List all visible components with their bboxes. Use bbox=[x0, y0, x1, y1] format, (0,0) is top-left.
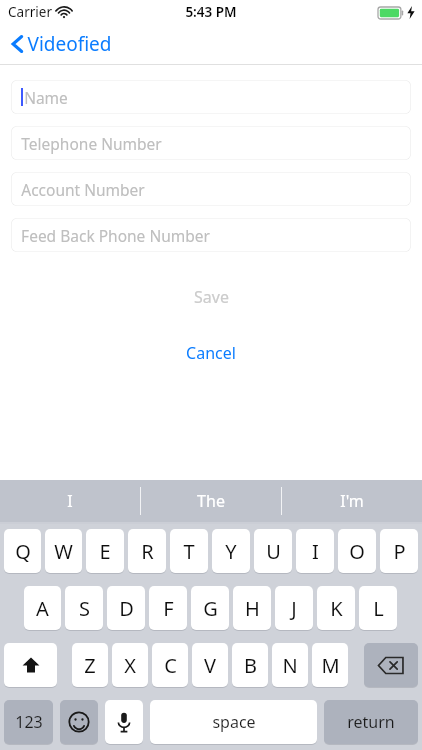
button[interactable]: V bbox=[192, 643, 228, 687]
staticText: Z bbox=[84, 652, 96, 679]
button[interactable]: I bbox=[296, 529, 334, 573]
staticText: Carrier bbox=[8, 3, 52, 21]
staticText: Save bbox=[194, 286, 229, 308]
button[interactable]: W bbox=[45, 529, 82, 573]
staticText: U bbox=[266, 538, 281, 565]
staticText: The bbox=[197, 490, 225, 512]
button[interactable]: Account Number bbox=[11, 172, 411, 206]
button[interactable]: N bbox=[272, 643, 308, 687]
button[interactable]: return bbox=[324, 700, 418, 744]
staticText: V bbox=[204, 652, 216, 679]
staticText: Account Number bbox=[21, 179, 145, 200]
staticText: Videofied bbox=[27, 31, 112, 57]
staticText: return bbox=[347, 711, 395, 733]
staticText: M bbox=[321, 652, 340, 679]
staticText: B bbox=[244, 652, 257, 679]
staticText: space bbox=[212, 711, 256, 733]
button[interactable]: The bbox=[141, 480, 281, 522]
staticText: Feed Back Phone Number bbox=[21, 225, 210, 246]
button[interactable]: Q bbox=[4, 529, 41, 573]
staticText: N bbox=[282, 652, 298, 679]
button[interactable]: 123 bbox=[4, 700, 53, 744]
staticText: C bbox=[164, 652, 177, 679]
staticText: X bbox=[124, 652, 136, 679]
button[interactable]: Name bbox=[11, 80, 411, 114]
button[interactable]: E bbox=[86, 529, 124, 573]
staticText: I bbox=[312, 538, 319, 565]
button[interactable]: Cancel bbox=[0, 340, 422, 366]
staticText: J bbox=[291, 595, 297, 622]
button[interactable]: B bbox=[232, 643, 268, 687]
staticText: Cancel bbox=[186, 342, 236, 364]
button[interactable]: M bbox=[312, 643, 348, 687]
staticText: H bbox=[245, 595, 260, 622]
staticText: K bbox=[330, 595, 343, 622]
staticText: L bbox=[373, 595, 384, 622]
staticText: A bbox=[36, 595, 49, 622]
button[interactable]: X bbox=[112, 643, 148, 687]
staticText: S bbox=[79, 595, 90, 622]
staticText: P bbox=[393, 538, 406, 565]
button[interactable]: Z bbox=[72, 643, 108, 687]
button[interactable]: T bbox=[170, 529, 208, 573]
button[interactable]: I bbox=[0, 480, 140, 522]
button[interactable]: Telephone Number bbox=[11, 126, 411, 160]
staticText: Telephone Number bbox=[21, 133, 162, 154]
staticText: T bbox=[183, 538, 195, 565]
staticText: 5:43 PM bbox=[185, 3, 237, 21]
button[interactable]: H bbox=[233, 586, 271, 630]
button[interactable]: U bbox=[254, 529, 292, 573]
button[interactable]: Emoji bbox=[60, 700, 98, 744]
button[interactable]: G bbox=[191, 586, 229, 630]
staticText: Name bbox=[24, 87, 68, 108]
staticText: D bbox=[119, 595, 134, 622]
button[interactable]: O bbox=[338, 529, 376, 573]
staticText: O bbox=[349, 538, 365, 565]
staticText: Q bbox=[15, 538, 31, 565]
button[interactable]: Feed Back Phone Number bbox=[11, 218, 411, 252]
staticText: G bbox=[203, 595, 218, 622]
button[interactable]: D bbox=[107, 586, 145, 630]
button[interactable]: K bbox=[317, 586, 355, 630]
button[interactable]: P bbox=[380, 529, 418, 573]
button[interactable]: S bbox=[65, 586, 103, 630]
button[interactable]: J bbox=[275, 586, 313, 630]
staticText: I bbox=[67, 490, 73, 512]
staticText: 123 bbox=[15, 711, 43, 733]
button[interactable]: space bbox=[150, 700, 317, 744]
staticText: W bbox=[54, 538, 73, 565]
button[interactable]: R bbox=[128, 529, 166, 573]
button[interactable]: F bbox=[149, 586, 187, 630]
button[interactable]: I'm bbox=[282, 480, 422, 522]
staticText: E bbox=[99, 538, 111, 565]
button[interactable]: Save bbox=[0, 284, 422, 310]
button[interactable]: A bbox=[24, 586, 61, 630]
staticText: I'm bbox=[340, 490, 364, 512]
button[interactable]: Dictate bbox=[105, 700, 143, 744]
staticText: R bbox=[141, 538, 154, 565]
button[interactable]: Backspace bbox=[364, 643, 418, 687]
staticText: F bbox=[163, 595, 174, 622]
button[interactable]: L bbox=[359, 586, 397, 630]
button[interactable]: Y bbox=[212, 529, 250, 573]
staticText: Y bbox=[225, 538, 237, 565]
button[interactable]: Shift bbox=[4, 643, 57, 687]
button[interactable]: C bbox=[152, 643, 188, 687]
button[interactable]: Videofied bbox=[11, 27, 120, 61]
